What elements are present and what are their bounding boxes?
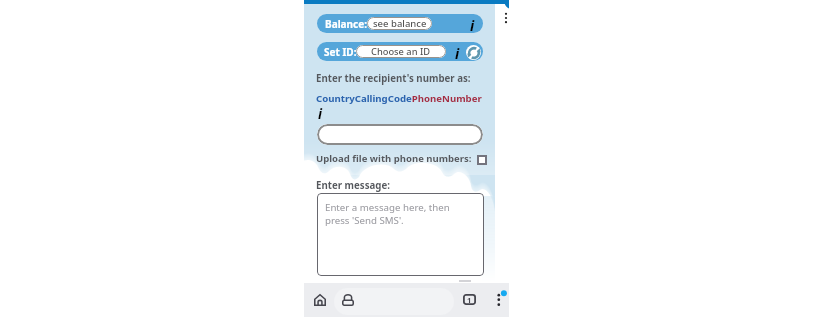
staticText: i bbox=[455, 44, 460, 61]
staticText: 1 bbox=[467, 295, 472, 305]
button[interactable]: Balance: bbox=[317, 14, 483, 33]
button[interactable] bbox=[334, 288, 454, 315]
staticText: CountryCallingCodePhoneNumber bbox=[316, 92, 482, 105]
staticText: Enter a message here, then press 'Send S… bbox=[325, 201, 450, 226]
button[interactable]: Set ID: bbox=[317, 42, 483, 61]
button[interactable] bbox=[317, 124, 483, 145]
button[interactable]: Home bbox=[305, 285, 334, 314]
staticText: Balance: bbox=[325, 17, 368, 31]
button[interactable]: More bbox=[503, 13, 509, 23]
button[interactable]: Enter a message here, then press 'Send S… bbox=[317, 193, 484, 276]
button[interactable]: Tabs bbox=[455, 285, 484, 314]
staticText: Set ID: bbox=[324, 45, 357, 59]
button[interactable]: More options bbox=[487, 285, 509, 307]
staticText: Upload file with phone numbers: bbox=[316, 152, 472, 165]
staticText: i bbox=[318, 105, 323, 123]
button[interactable]: Upload file with phone numbers bbox=[477, 155, 487, 165]
staticText: Enter the recipient's number as: bbox=[316, 72, 471, 85]
staticText: see balance bbox=[373, 17, 427, 30]
button[interactable]: Refresh bbox=[466, 45, 481, 60]
staticText: i bbox=[470, 16, 475, 33]
staticText: Choose an ID bbox=[371, 45, 431, 58]
staticText: Enter message: bbox=[316, 179, 390, 192]
